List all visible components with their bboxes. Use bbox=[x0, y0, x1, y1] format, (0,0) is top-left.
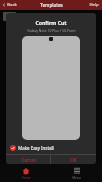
staticText: Menu bbox=[72, 176, 81, 180]
staticText: Confirm Cut bbox=[35, 19, 67, 26]
staticText: Back bbox=[7, 2, 17, 8]
button[interactable]: Galaxy Note 10 Plus / 5G bbox=[0, 10, 102, 23]
button[interactable]: Make Easy Install bbox=[6, 143, 96, 153]
staticText: Help bbox=[89, 2, 99, 8]
button[interactable]: OK bbox=[51, 155, 96, 164]
staticText: Cancel bbox=[21, 157, 36, 163]
staticText: Galaxy Note 10 Plus / 5G Front bbox=[27, 28, 76, 33]
staticText: Templates bbox=[40, 2, 63, 8]
staticText: OK bbox=[70, 157, 77, 163]
button[interactable]: Home bbox=[0, 164, 51, 182]
button[interactable]: Cancel bbox=[6, 155, 50, 164]
button[interactable]: Back bbox=[0, 0, 19, 10]
staticText: Home bbox=[21, 176, 31, 180]
button[interactable]: Help bbox=[86, 0, 102, 10]
button[interactable]: Menu bbox=[51, 164, 102, 182]
staticText: Make Easy Install bbox=[18, 145, 54, 151]
